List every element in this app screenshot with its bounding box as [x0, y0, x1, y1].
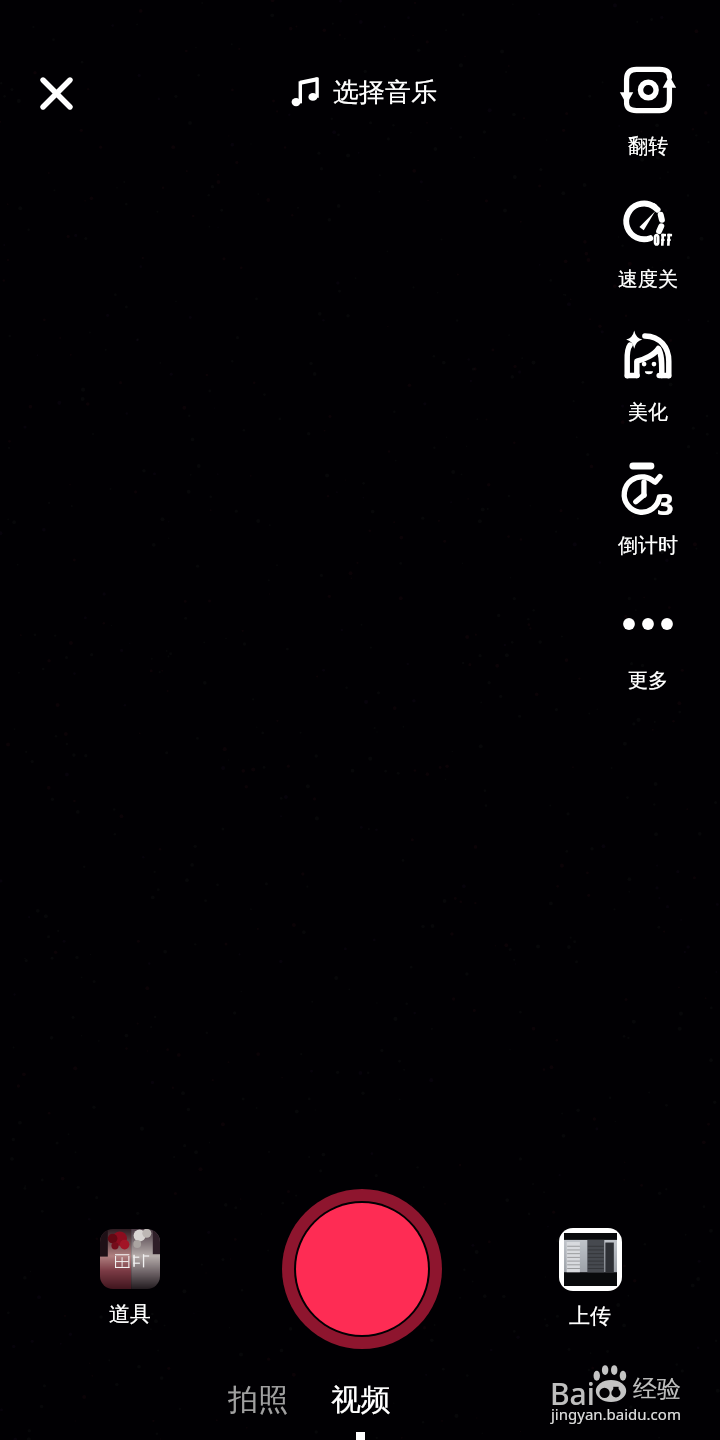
staticText: 速度关 [618, 267, 678, 292]
button[interactable]: Record [282, 1189, 442, 1349]
button[interactable]: Beautify [593, 325, 703, 425]
button[interactable]: 拍照 [212, 1377, 304, 1423]
button[interactable]: 道具 [80, 1229, 180, 1327]
button[interactable]: Speed off [593, 192, 703, 292]
staticText: Bai [550, 1373, 595, 1414]
staticText: 选择音乐 [333, 76, 437, 109]
button[interactable]: More [593, 593, 703, 693]
staticText: 道具 [109, 1301, 151, 1327]
button[interactable]: 视频 [315, 1377, 407, 1423]
staticText: 经验 [633, 1374, 681, 1404]
button[interactable]: 选择音乐 [285, 74, 443, 111]
staticText: 更多 [628, 668, 668, 693]
staticText: 倒计时 [618, 533, 678, 558]
staticText: 拍照 [228, 1381, 288, 1419]
staticText: 美化 [628, 400, 668, 425]
button[interactable]: 上传 [540, 1228, 640, 1329]
staticText: jingyan.baidu.com [551, 1404, 681, 1424]
button[interactable]: Close [26, 63, 86, 123]
button[interactable]: Countdown [593, 458, 703, 558]
staticText: 翻转 [628, 134, 668, 159]
staticText: 3 [657, 484, 674, 523]
button[interactable]: Flip camera [593, 59, 703, 159]
staticText: 视频 [331, 1381, 391, 1419]
staticText: 上传 [569, 1303, 611, 1329]
